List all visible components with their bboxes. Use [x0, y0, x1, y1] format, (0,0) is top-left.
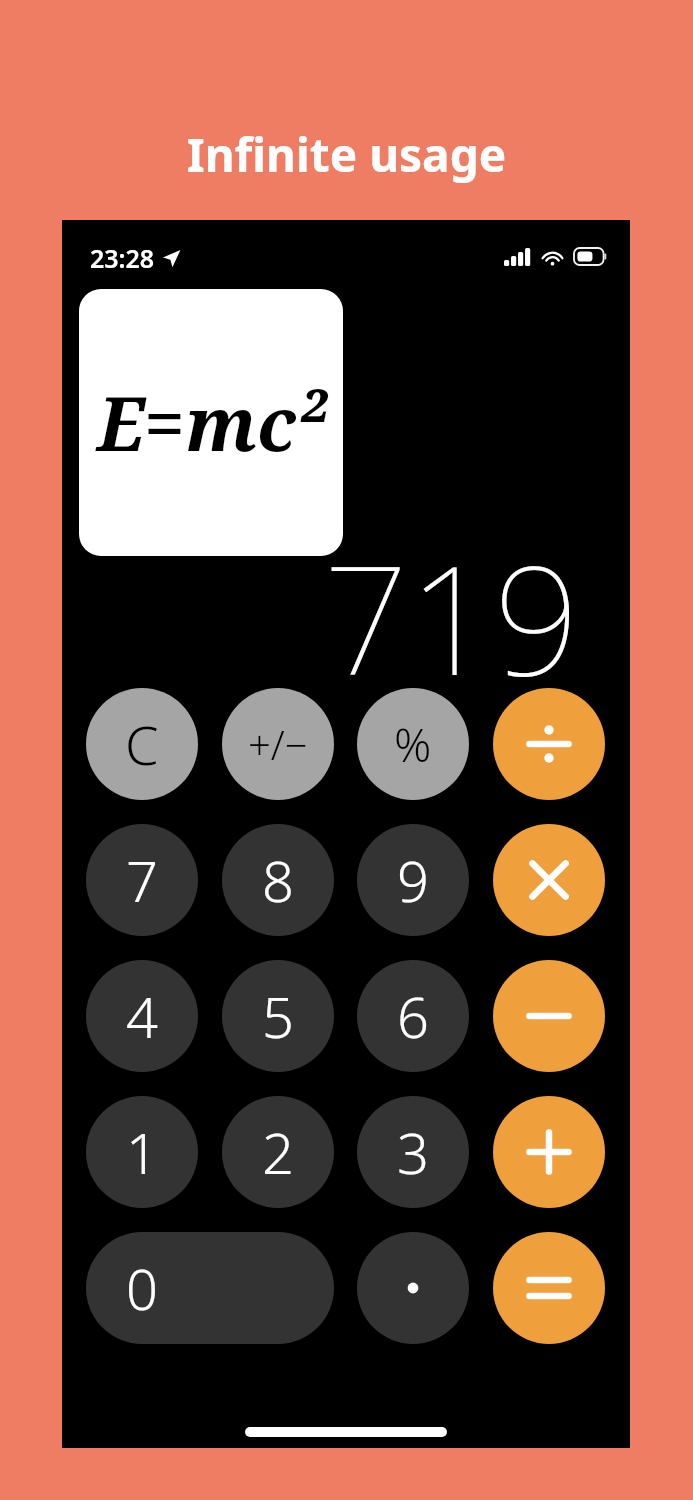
button[interactable]: Multiply: [493, 824, 605, 936]
button[interactable]: 9: [357, 824, 469, 936]
button[interactable]: +/−: [222, 688, 334, 800]
staticText: 6: [397, 978, 429, 1054]
button[interactable]: 3: [357, 1096, 469, 1208]
staticText: 5: [262, 978, 294, 1054]
staticText: %: [394, 713, 432, 776]
button[interactable]: %: [357, 688, 469, 800]
button[interactable]: 8: [222, 824, 334, 936]
staticText: 4: [126, 978, 158, 1054]
button[interactable]: 0: [86, 1232, 334, 1344]
button[interactable]: 5: [222, 960, 334, 1072]
button[interactable]: 7: [86, 824, 198, 936]
staticText: C: [125, 707, 159, 781]
button[interactable]: Decimal point: [357, 1232, 469, 1344]
staticText: 719: [323, 515, 580, 700]
button[interactable]: E=mc²: [79, 289, 343, 556]
button[interactable]: C: [86, 688, 198, 800]
staticText: +/−: [248, 717, 308, 771]
button[interactable]: Equals: [493, 1232, 605, 1344]
staticText: Infinite usage: [0, 123, 693, 186]
staticText: 7: [126, 842, 158, 918]
staticText: 2: [262, 1114, 294, 1190]
button[interactable]: 4: [86, 960, 198, 1072]
button[interactable]: Divide: [493, 688, 605, 800]
staticText: E=mc²: [97, 372, 326, 473]
button[interactable]: 1: [86, 1096, 198, 1208]
button[interactable]: Subtract: [493, 960, 605, 1072]
staticText: 1: [126, 1114, 158, 1190]
button[interactable]: Add: [493, 1096, 605, 1208]
staticText: 8: [262, 842, 294, 918]
staticText: 23:28: [90, 241, 155, 275]
staticText: 3: [397, 1114, 429, 1190]
staticText: 0: [126, 1250, 158, 1326]
staticText: 9: [397, 842, 429, 918]
button[interactable]: 6: [357, 960, 469, 1072]
button[interactable]: 2: [222, 1096, 334, 1208]
